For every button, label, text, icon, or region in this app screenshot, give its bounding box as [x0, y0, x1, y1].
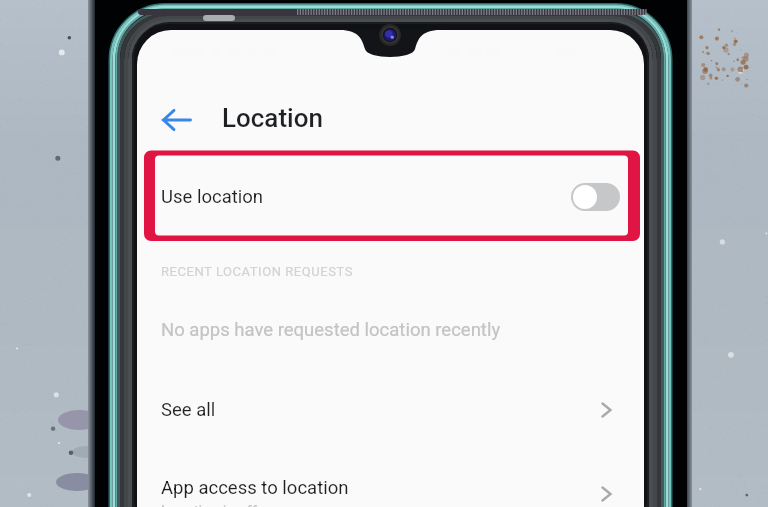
button[interactable]: See all — [137, 393, 644, 427]
staticText: Use location — [161, 186, 264, 208]
button[interactable]: Back — [151, 94, 203, 146]
button[interactable]: Use location toggle — [571, 183, 620, 211]
staticText: Location is off — [161, 502, 257, 507]
button[interactable]: Use location — [137, 155, 644, 239]
staticText: RECENT LOCATION REQUESTS — [161, 264, 353, 279]
staticText: App access to location — [161, 477, 349, 499]
staticText: No apps have requested location recently — [161, 319, 501, 341]
staticText: Location — [222, 103, 323, 133]
staticText: See all — [161, 399, 216, 421]
button[interactable]: App access to location — [137, 477, 644, 507]
